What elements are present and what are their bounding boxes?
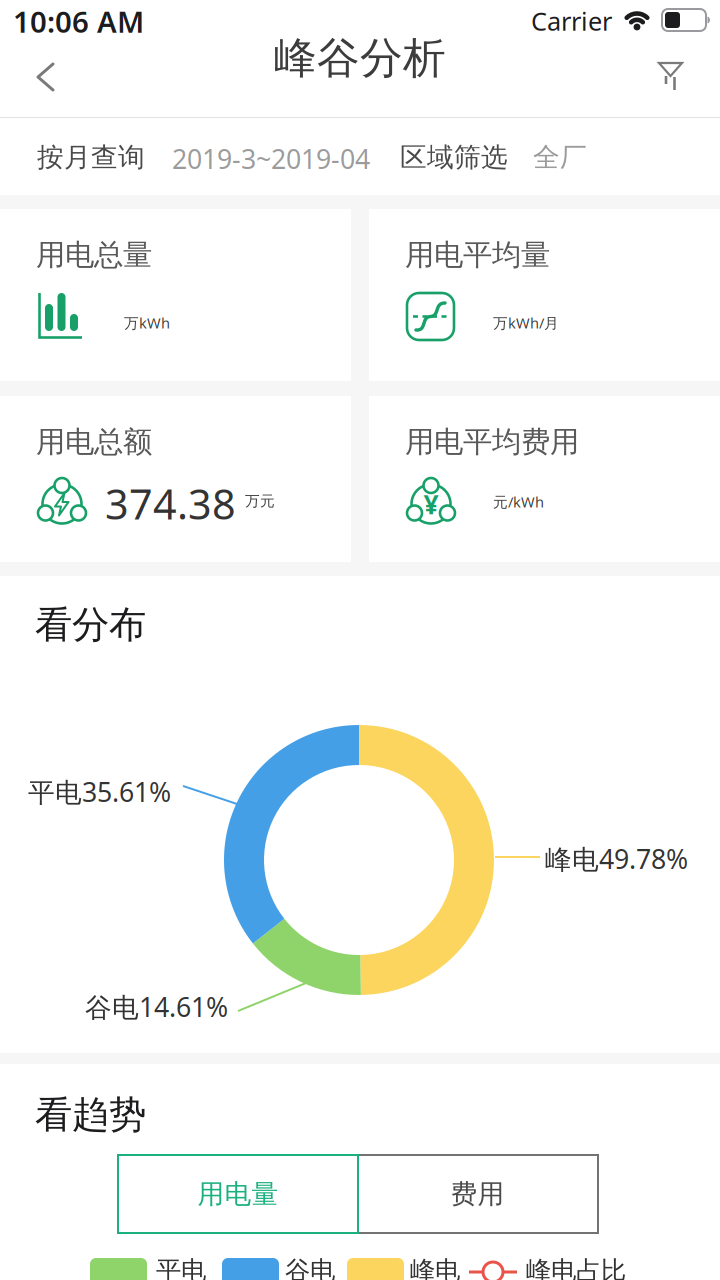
button[interactable]: 用电量 (118, 1155, 358, 1233)
staticText: 万元 (245, 492, 275, 510)
staticText: 用电平均量 (405, 237, 550, 273)
staticText: 用电量 (197, 1178, 278, 1210)
staticText: 谷电14.61% (85, 989, 228, 1024)
staticText: ¥ (423, 486, 438, 522)
button[interactable]: Back (0, 0, 90, 118)
staticText: 费用 (450, 1178, 504, 1210)
staticText: 峰电 (410, 1255, 460, 1280)
staticText: 峰电占比 (526, 1255, 626, 1280)
staticText: 全厂 (533, 141, 587, 174)
staticText: 万kWh (124, 313, 170, 332)
button[interactable]: 费用 (357, 1155, 598, 1233)
staticText: 374.38 (105, 476, 236, 531)
staticText: 平电35.61% (28, 774, 171, 809)
staticText: 看趋势 (35, 1092, 146, 1138)
staticText: 万kWh/月 (493, 313, 559, 332)
staticText: 按月查询 (37, 141, 145, 174)
staticText: 看分布 (35, 602, 146, 648)
button[interactable]: 按月查询 (0, 118, 380, 195)
button[interactable]: 区域筛选 (400, 118, 620, 195)
button[interactable]: Filter (644, 0, 720, 118)
staticText: 区域筛选 (400, 141, 508, 174)
staticText: 谷电 (285, 1255, 335, 1280)
staticText: 用电平均费用 (405, 424, 579, 460)
staticText: 用电总量 (36, 237, 152, 273)
staticText: 2019-3~2019-04 (172, 141, 370, 176)
staticText: 平电 (156, 1255, 206, 1280)
staticText: 峰谷分析 (274, 32, 446, 84)
staticText: Carrier (531, 4, 612, 38)
staticText: 用电总额 (36, 424, 152, 460)
staticText: 10:06 AM (13, 2, 144, 41)
staticText: 元/kWh (493, 492, 544, 511)
staticText: 峰电49.78% (545, 841, 688, 876)
